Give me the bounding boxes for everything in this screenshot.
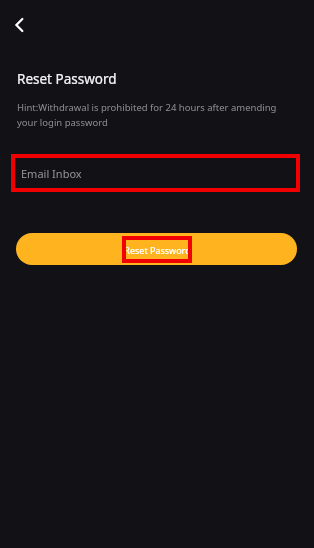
staticText: Hint:Withdrawal is prohibited for 24 hou… — [17, 101, 277, 129]
staticText: Reset Password — [124, 244, 191, 256]
staticText: Email Inbox — [21, 166, 82, 181]
button[interactable]: Back — [6, 11, 34, 39]
button[interactable]: Reset Password — [16, 233, 297, 265]
staticText: Reset Password — [17, 70, 117, 88]
button[interactable]: Email Inbox — [11, 154, 300, 192]
